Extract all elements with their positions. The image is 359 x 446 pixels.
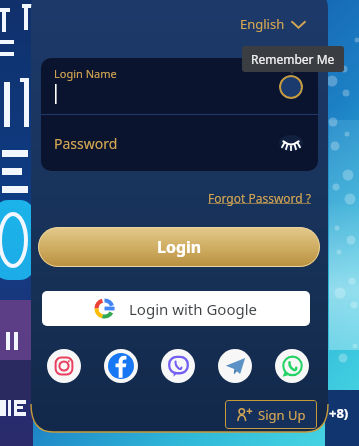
staticText: +8) [329,404,349,422]
staticText: Password [54,134,118,153]
button[interactable]: Instagram [47,349,81,383]
button[interactable]: Facebook [104,349,138,383]
staticText: English [240,15,285,33]
button[interactable]: Forgot Password ? [208,190,312,206]
staticText: Forgot Password ? [208,190,312,206]
button[interactable]: English [240,15,305,33]
button[interactable]: Remember Me [279,75,303,99]
staticText: Login with Google [129,299,258,319]
button[interactable]: WhatsApp [275,349,309,383]
button[interactable]: Login Name [41,58,318,114]
button[interactable]: Login with Google [42,291,310,326]
staticText: Remember Me [251,51,335,67]
button[interactable]: Login [38,227,320,267]
button[interactable]: Sign Up [225,400,317,429]
button[interactable]: Show password [276,132,306,154]
button[interactable]: Telegram [218,349,252,383]
staticText: Sign Up [258,406,306,424]
staticText: Login [157,236,202,258]
button[interactable]: Password [41,115,318,171]
staticText: Login Name [54,66,117,81]
button[interactable]: Viber [161,349,195,383]
